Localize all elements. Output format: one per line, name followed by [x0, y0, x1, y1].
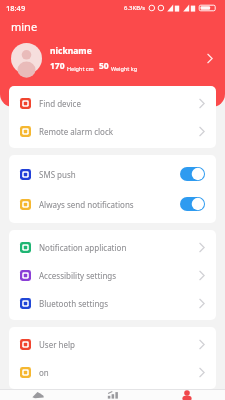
button[interactable]: User help: [9, 330, 216, 358]
staticText: Find device: [39, 98, 199, 109]
staticText: User help: [39, 339, 199, 350]
staticText: Remote alarm clock: [39, 126, 199, 137]
staticText: Bluetooth settings: [39, 298, 199, 309]
button[interactable]: motion: [1, 390, 75, 400]
button[interactable]: mine: [150, 390, 224, 400]
button[interactable]: on: [9, 358, 216, 386]
button[interactable]: data: [76, 390, 150, 400]
staticText: 170: [50, 60, 65, 72]
staticText: Always send notifications: [39, 199, 180, 210]
button[interactable]: Accessibility settings: [9, 261, 216, 289]
button[interactable]: Remote alarm clock: [9, 117, 216, 145]
button[interactable]: Notification application: [9, 233, 216, 261]
staticText: mine: [11, 19, 38, 34]
button[interactable]: Find device: [9, 89, 216, 117]
staticText: Height cm: [67, 65, 94, 72]
staticText: SMS push: [39, 169, 180, 180]
button[interactable]: SMS push: [9, 159, 216, 189]
staticText: Weight kg: [111, 65, 138, 72]
button[interactable]: nickname: [0, 36, 225, 80]
staticText: Accessibility settings: [39, 270, 199, 281]
staticText: on: [39, 367, 199, 378]
staticText: 50: [99, 60, 109, 72]
staticText: Notification application: [39, 242, 199, 253]
staticText: 6.3KB/s: [124, 4, 146, 12]
button[interactable]: Always send notifications: [9, 189, 216, 219]
staticText: 18:49: [6, 3, 26, 13]
staticText: nickname: [50, 45, 92, 57]
button[interactable]: Bluetooth settings: [9, 289, 216, 317]
